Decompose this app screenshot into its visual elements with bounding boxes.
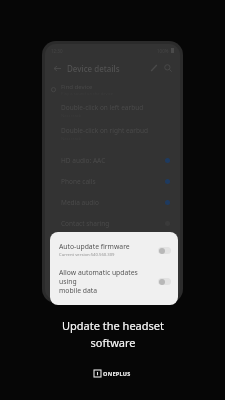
staticText: ONEPLUS <box>103 370 131 377</box>
button[interactable]: Back <box>50 61 64 75</box>
staticText: Device details <box>67 63 120 74</box>
button[interactable]: Edit <box>147 61 161 75</box>
staticText: Current version:540.560.309 <box>59 252 115 258</box>
button[interactable]: Media audio <box>45 192 180 213</box>
staticText: Phone calls <box>61 177 96 186</box>
staticText: Contact sharing <box>61 219 110 228</box>
staticText: Allow automatic updates using <box>59 268 152 286</box>
staticText: HD audio: AAC <box>61 156 106 165</box>
button[interactable]: HD audio: AAC <box>45 150 180 171</box>
staticText: mobile data <box>59 286 98 295</box>
staticText: Auto-update firmware <box>59 242 130 251</box>
staticText: 12:30 <box>51 48 63 54</box>
button[interactable]: Allow automatic updates using <box>50 263 178 300</box>
button[interactable]: Search <box>161 61 175 75</box>
staticText: Update the headset <box>62 318 164 333</box>
staticText: Double-click on left earbud <box>61 103 144 112</box>
staticText: Media audio <box>61 198 99 207</box>
staticText: 100% <box>157 48 169 54</box>
staticText: software <box>90 335 136 350</box>
staticText: Find device <box>61 83 93 91</box>
staticText: Function Description <box>59 285 118 293</box>
staticText: Double-click on right earbud <box>61 126 148 135</box>
button[interactable]: Phone calls <box>45 171 180 192</box>
button[interactable]: Auto-update firmware <box>50 237 178 263</box>
button[interactable]: Contact sharing <box>45 213 180 234</box>
